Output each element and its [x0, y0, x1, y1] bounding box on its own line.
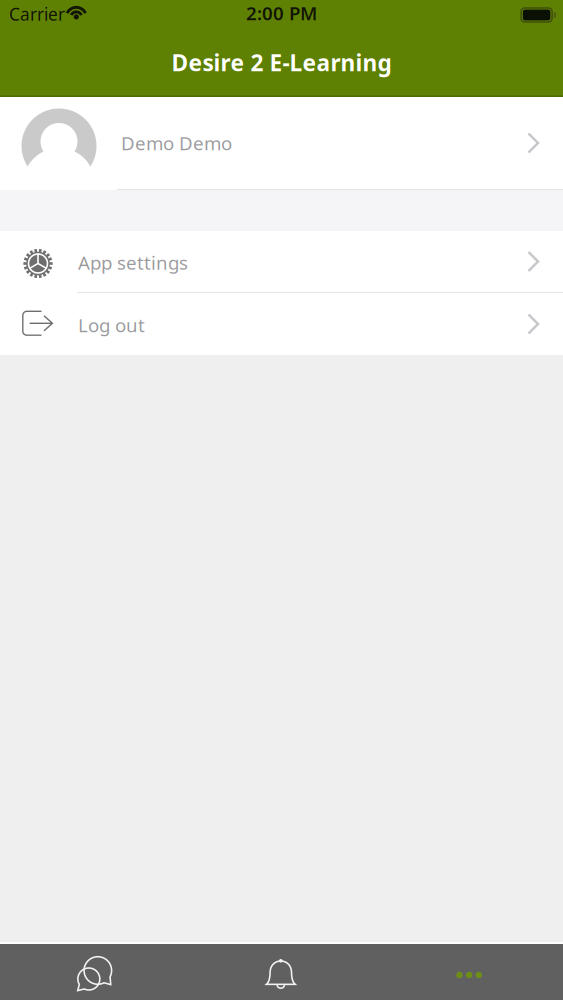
button[interactable]: More — [375, 944, 563, 1000]
button[interactable]: Notifications — [188, 944, 375, 1000]
button[interactable]: Log out — [0, 293, 563, 355]
button[interactable]: Messages — [0, 944, 188, 1000]
staticText: Carrier — [9, 2, 65, 25]
button[interactable]: Demo Demo — [0, 97, 563, 190]
staticText: Desire 2 E-Learning — [171, 47, 391, 77]
staticText: Demo Demo — [121, 131, 232, 155]
staticText: Log out — [78, 313, 145, 337]
staticText: 2:00 PM — [246, 1, 317, 25]
staticText: App settings — [78, 250, 188, 275]
button[interactable]: App settings — [0, 231, 563, 293]
